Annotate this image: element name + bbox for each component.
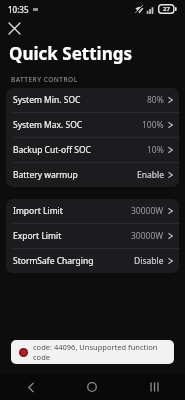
button[interactable]: Battery warmup <box>6 163 179 187</box>
staticText: code: 44096, Unsupported function code <box>33 342 166 362</box>
button[interactable]: Recent apps <box>123 374 185 400</box>
button[interactable]: StormSafe Charging <box>6 249 179 273</box>
button[interactable]: Export Limit <box>6 224 179 248</box>
button[interactable]: System Min. SOC <box>6 88 179 112</box>
staticText: 100% <box>142 119 164 131</box>
staticText: System Max. SOC <box>13 119 83 131</box>
staticText: 10:35 <box>8 4 29 15</box>
staticText: Disable <box>134 255 164 267</box>
button[interactable]: Back <box>0 374 61 400</box>
staticText: BATTERY CONTROL <box>11 75 78 84</box>
button[interactable]: System Max. SOC <box>6 113 179 137</box>
staticText: 10% <box>147 144 164 156</box>
staticText: Enable <box>137 169 164 181</box>
staticText: 30000W <box>131 230 164 242</box>
button[interactable]: code: 44096, Unsupported function code <box>11 340 174 364</box>
staticText: Backup Cut-off SOC <box>13 144 91 156</box>
button[interactable]: Import Limit <box>6 199 179 223</box>
staticText: Import Limit <box>13 205 63 217</box>
staticText: 80% <box>147 94 164 106</box>
staticText: System Min. SOC <box>13 94 81 106</box>
staticText: Quick Settings <box>9 42 132 65</box>
button[interactable]: Home <box>61 374 123 400</box>
staticText: StormSafe Charging <box>13 255 94 267</box>
staticText: 27 <box>163 5 170 13</box>
staticText: Export Limit <box>13 230 62 242</box>
staticText: Battery warmup <box>13 169 78 181</box>
staticText: 30000W <box>131 205 164 217</box>
button[interactable]: Close <box>4 18 24 38</box>
button[interactable]: Backup Cut-off SOC <box>6 138 179 162</box>
